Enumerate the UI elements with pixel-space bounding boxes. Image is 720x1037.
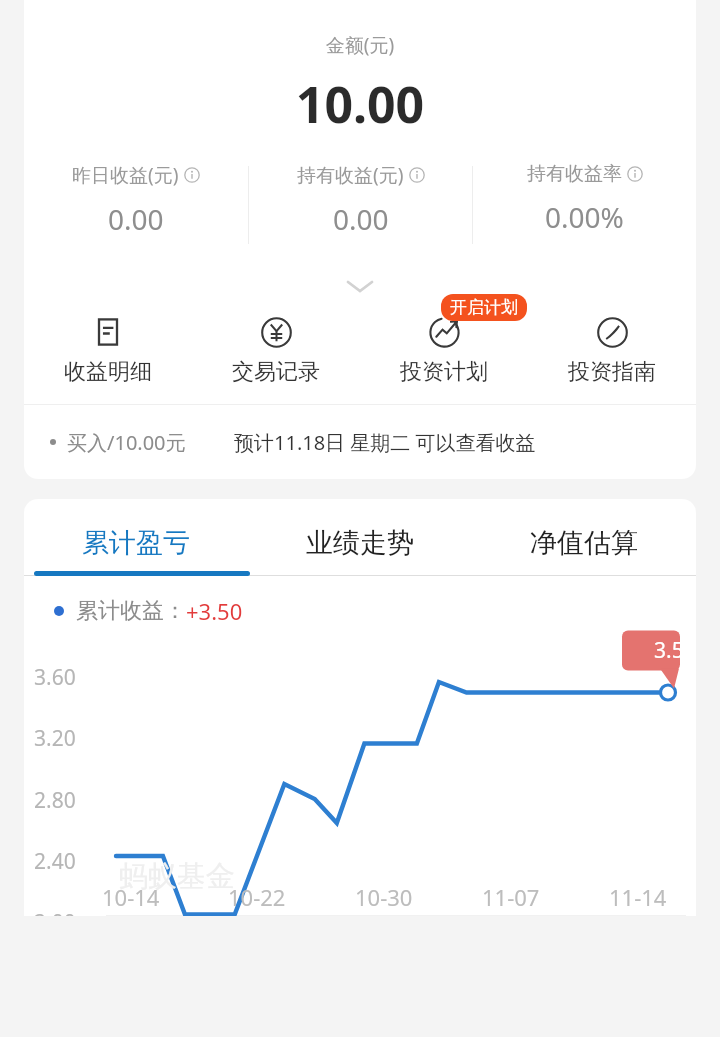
staticText: 蚂蚁基金: [119, 858, 235, 895]
staticText: 0.00: [108, 200, 164, 238]
staticText: 昨日收益(元): [72, 162, 179, 188]
button[interactable]: 投资指南: [528, 298, 696, 392]
staticText: 0.00%: [545, 198, 624, 236]
staticText: 金额(元): [24, 32, 696, 58]
staticText: 2.00: [34, 908, 76, 916]
staticText: 10.00: [24, 70, 696, 138]
staticText: 累计收益：: [76, 597, 186, 625]
staticText: 3.5: [654, 636, 684, 665]
other: 投资计划: [429, 317, 460, 348]
staticText: 买入/10.00元: [67, 429, 186, 456]
other: 收益明细: [93, 317, 123, 347]
staticText: 2.40: [34, 847, 76, 876]
staticText: 投资计划: [400, 358, 488, 386]
staticText: +3.50: [186, 596, 243, 626]
button[interactable]: 净值估算: [472, 515, 696, 571]
other: 交易记录: [261, 317, 292, 348]
staticText: 预计11.18日 星期二 可以查看收益: [234, 429, 536, 456]
button[interactable]: 投资计划: [360, 298, 528, 392]
staticText: 10-30: [355, 882, 482, 912]
button[interactable]: 业绩走势: [248, 515, 472, 571]
button[interactable]: 持有收益(元): [249, 162, 472, 248]
staticText: 持有收益(元): [297, 162, 404, 188]
button[interactable]: 昨日收益(元): [24, 162, 248, 248]
staticText: 0.00: [333, 200, 389, 238]
staticText: 2.80: [34, 786, 76, 815]
staticText: 3.20: [34, 724, 76, 753]
staticText: 收益明细: [64, 358, 152, 386]
staticText: 累计盈亏: [82, 526, 190, 560]
staticText: 投资指南: [568, 358, 656, 386]
staticText: 3.60: [34, 663, 76, 692]
staticText: 业绩走势: [306, 526, 414, 560]
staticText: 开启计划: [450, 297, 518, 318]
staticText: 持有收益率: [527, 162, 622, 186]
staticText: 10-22: [228, 882, 355, 912]
staticText: 净值估算: [530, 526, 638, 560]
button[interactable]: 持有收益率: [473, 162, 696, 248]
staticText: 10-14: [102, 882, 228, 912]
other: 投资指南: [597, 317, 628, 348]
staticText: 11-07: [482, 882, 609, 912]
button[interactable]: 累计盈亏: [24, 515, 248, 571]
button[interactable]: 交易记录: [192, 298, 360, 392]
staticText: 11-14: [609, 882, 688, 912]
button[interactable]: 收益明细: [24, 298, 192, 392]
staticText: 交易记录: [232, 358, 320, 386]
